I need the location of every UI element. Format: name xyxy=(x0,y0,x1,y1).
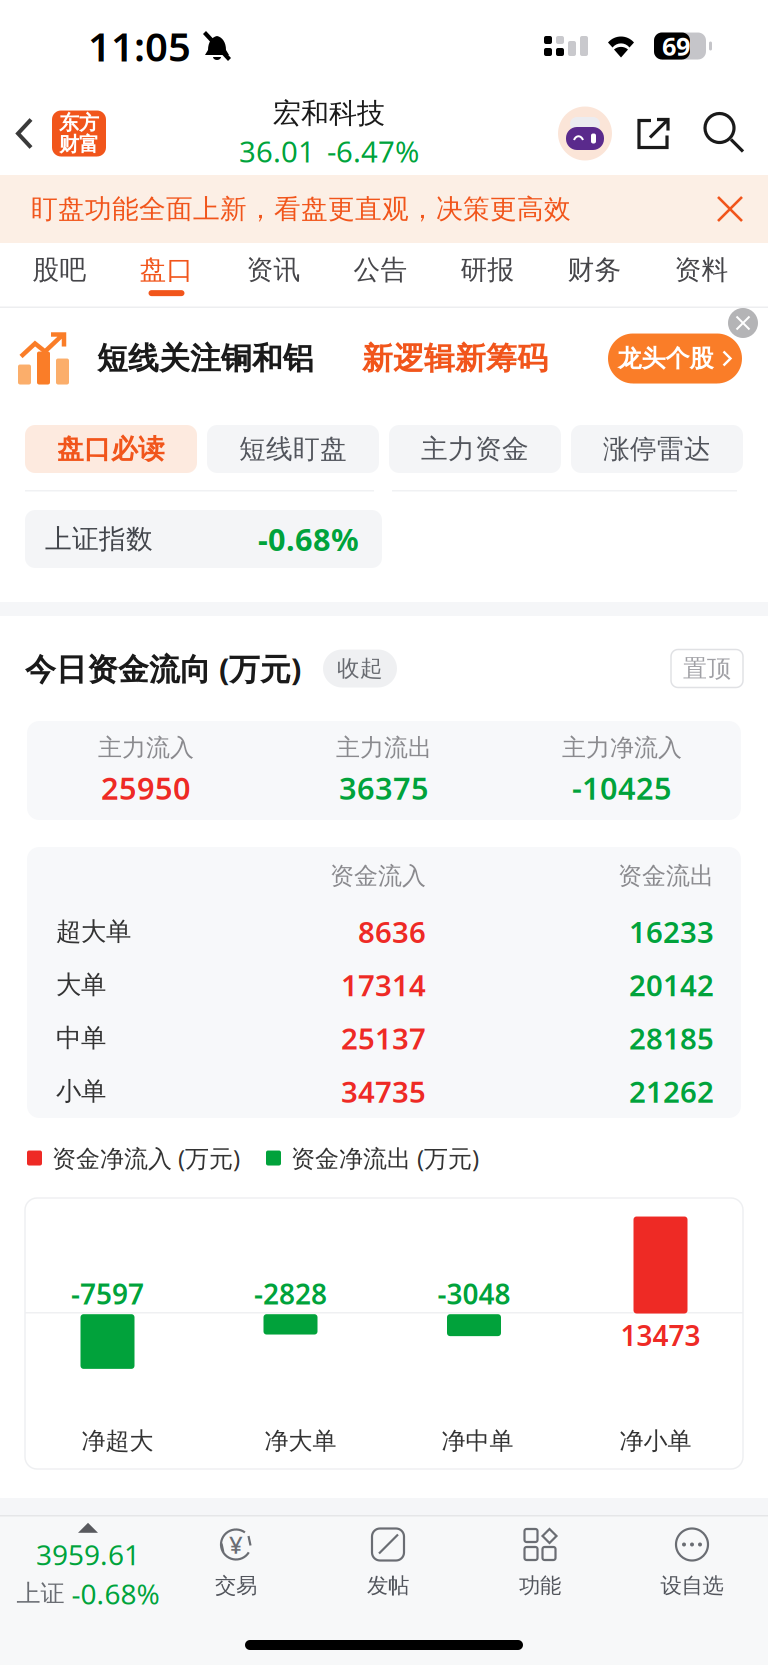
staticText: 25137 xyxy=(341,1019,426,1058)
button[interactable]: Share xyxy=(618,94,688,172)
button[interactable]: 主力资金 xyxy=(389,425,561,473)
staticText: 36375 xyxy=(339,767,429,808)
staticText: 8636 xyxy=(358,912,426,951)
staticText: -0.68% xyxy=(258,519,359,559)
button[interactable]: 收起 xyxy=(323,649,397,687)
staticText: 上证指数 xyxy=(45,523,153,555)
button[interactable]: 股吧 xyxy=(6,243,113,306)
staticText: 今日资金流向 (万元) xyxy=(25,648,301,689)
staticText: 资金净流入 (万元) xyxy=(52,1142,240,1174)
staticText: 短线盯盘 xyxy=(239,433,347,465)
staticText: 28185 xyxy=(629,1019,714,1058)
staticText: 财务 xyxy=(567,253,621,286)
staticText: ¥ xyxy=(229,1529,243,1560)
staticText: 25950 xyxy=(101,767,191,808)
staticText: 中单 xyxy=(56,1023,106,1054)
button[interactable]: Back xyxy=(0,94,52,172)
button[interactable]: 3959.61 xyxy=(0,1516,160,1616)
staticText: 龙头个股 xyxy=(617,344,713,373)
staticText: 净中单 xyxy=(441,1426,513,1456)
staticText: 净小单 xyxy=(619,1426,691,1456)
staticText: -10425 xyxy=(572,767,672,808)
staticText: 资金净流出 (万元) xyxy=(291,1142,479,1174)
staticText: 设自选 xyxy=(660,1572,723,1599)
staticText: 资料 xyxy=(674,253,728,286)
staticText: 短线关注铜和铝 xyxy=(97,340,314,377)
staticText: 主力流入 xyxy=(98,733,194,762)
staticText: 11:05 xyxy=(88,19,191,72)
staticText: -6.47% xyxy=(327,132,419,171)
staticText: 36.01 xyxy=(239,132,315,171)
button[interactable]: 研报 xyxy=(434,243,541,306)
staticText: 上证 xyxy=(16,1579,64,1608)
button[interactable]: 置顶 xyxy=(671,649,743,687)
staticText: -2828 xyxy=(254,1275,327,1312)
button[interactable]: 资讯 xyxy=(220,243,327,306)
staticText: 大单 xyxy=(56,969,106,1000)
staticText: -0.68% xyxy=(71,1575,159,1612)
button[interactable]: 公告 xyxy=(327,243,434,306)
button[interactable]: 财务 xyxy=(541,243,648,306)
staticText: 盘口必读 xyxy=(57,433,165,465)
staticText: 收起 xyxy=(337,655,383,682)
staticText: 宏和科技 xyxy=(273,96,385,131)
button[interactable]: Close banner xyxy=(698,175,762,243)
button[interactable]: 盘口必读 xyxy=(25,425,197,473)
button[interactable]: 发帖 xyxy=(312,1516,464,1616)
staticText: 置顶 xyxy=(683,654,731,683)
staticText: 盘口 xyxy=(139,253,193,286)
staticText: 34735 xyxy=(341,1072,426,1111)
staticText: 资金流出 xyxy=(618,861,714,891)
staticText: 超大单 xyxy=(56,916,131,947)
staticText: 净大单 xyxy=(264,1426,336,1456)
staticText: 69 xyxy=(662,29,690,63)
button[interactable]: 盘口 xyxy=(113,243,220,306)
staticText: 发帖 xyxy=(367,1572,409,1599)
button[interactable]: ¥ xyxy=(160,1516,312,1616)
button[interactable]: 上证指数 xyxy=(25,510,382,568)
staticText: 主力净流入 xyxy=(562,733,682,762)
button[interactable]: 涨停雷达 xyxy=(571,425,743,473)
staticText: 小单 xyxy=(56,1076,106,1107)
button[interactable]: East Money xyxy=(52,110,106,156)
staticText: 16233 xyxy=(629,912,714,951)
staticText: 20142 xyxy=(629,965,714,1004)
staticText: -7597 xyxy=(71,1275,144,1312)
staticText: 新逻辑新筹码 xyxy=(362,340,548,377)
staticText: 财富 xyxy=(59,132,99,157)
button[interactable]: 龙头个股 xyxy=(608,333,742,383)
staticText: 盯盘功能全面上新，看盘更直观，决策更高效 xyxy=(31,193,571,225)
staticText: 公告 xyxy=(353,253,407,286)
button[interactable]: AI Assistant xyxy=(552,94,618,172)
button[interactable]: Close ad xyxy=(728,308,768,342)
staticText: 交易 xyxy=(215,1572,257,1599)
staticText: 东方 xyxy=(59,110,99,135)
staticText: 功能 xyxy=(519,1572,561,1599)
staticText: 17314 xyxy=(341,965,426,1004)
button[interactable]: 资料 xyxy=(648,243,755,306)
staticText: 股吧 xyxy=(32,253,86,286)
button[interactable]: 功能 xyxy=(464,1516,616,1616)
staticText: 主力资金 xyxy=(421,433,529,465)
staticText: 涨停雷达 xyxy=(603,433,711,465)
staticText: -3048 xyxy=(437,1275,510,1312)
button[interactable]: Search xyxy=(688,94,762,172)
staticText: 资讯 xyxy=(246,253,300,286)
staticText: 研报 xyxy=(460,253,514,286)
staticText: 3959.61 xyxy=(36,1536,140,1573)
button[interactable]: 设自选 xyxy=(616,1516,768,1616)
staticText: 资金流入 xyxy=(330,861,426,891)
staticText: 主力流出 xyxy=(336,733,432,762)
button[interactable]: 短线盯盘 xyxy=(207,425,379,473)
staticText: 13473 xyxy=(620,1316,700,1354)
staticText: 净超大 xyxy=(81,1426,153,1456)
staticText: 21262 xyxy=(629,1072,714,1111)
